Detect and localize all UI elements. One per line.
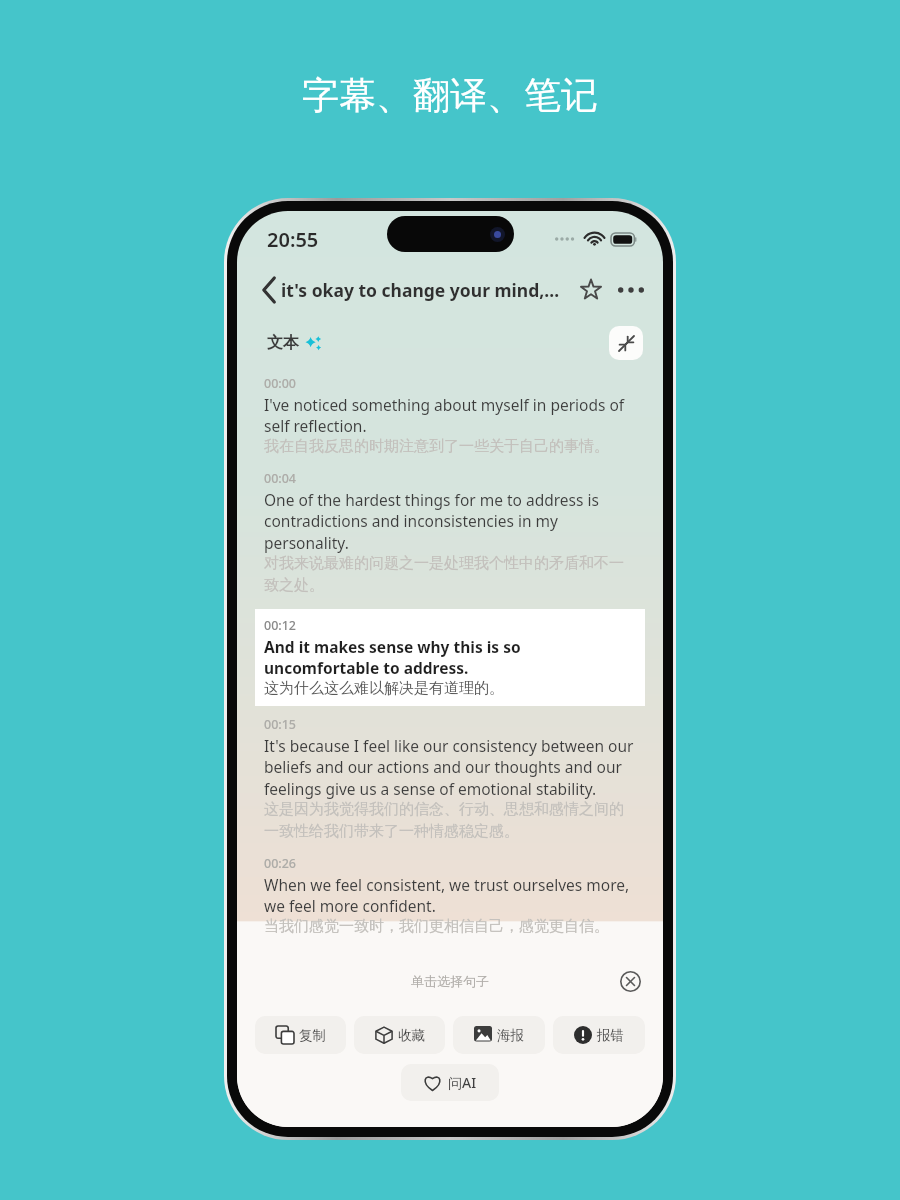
staticText: When we feel consistent, we trust oursel…: [264, 874, 636, 917]
staticText: I've noticed something about myself in p…: [264, 394, 636, 437]
staticText: 00:12: [264, 617, 297, 634]
staticText: It's because I feel like our consistency…: [264, 735, 636, 800]
button[interactable]: 00:12: [255, 609, 645, 706]
staticText: 文本: [267, 333, 299, 353]
button[interactable]: Close: [615, 966, 645, 996]
staticText: 00:26: [264, 855, 297, 872]
button[interactable]: 00:00: [237, 375, 663, 456]
staticText: 20:55: [267, 226, 319, 253]
staticText: One of the hardest things for me to addr…: [264, 489, 636, 554]
button[interactable]: Collapse: [609, 326, 643, 360]
staticText: 00:04: [264, 470, 297, 487]
button[interactable]: 报错: [553, 1016, 645, 1054]
staticText: 单击选择句子: [411, 973, 489, 989]
staticText: 复制: [299, 1027, 326, 1044]
staticText: 00:15: [264, 716, 297, 733]
button[interactable]: More options: [613, 272, 649, 308]
button[interactable]: 00:26: [237, 855, 663, 936]
button[interactable]: 00:15: [237, 716, 663, 841]
button[interactable]: 复制: [255, 1016, 346, 1054]
staticText: 收藏: [398, 1027, 425, 1044]
staticText: 00:00: [264, 375, 297, 392]
button[interactable]: Favorite: [573, 272, 609, 308]
button[interactable]: 收藏: [354, 1016, 445, 1054]
staticText: 报错: [597, 1027, 624, 1044]
staticText: 我在自我反思的时期注意到了一些关于自己的事情。: [264, 437, 609, 456]
staticText: 字幕、翻译、笔记: [302, 72, 598, 119]
staticText: 海报: [497, 1027, 524, 1044]
staticText: it's okay to change your mind,…: [281, 278, 560, 302]
staticText: And it makes sense why this is so uncomf…: [264, 636, 636, 679]
button[interactable]: 文本: [263, 329, 326, 357]
button[interactable]: 问AI: [401, 1064, 499, 1101]
button[interactable]: 00:04: [237, 470, 663, 595]
staticText: 这是因为我觉得我们的信念、行动、思想和感情之间的一致性给我们带来了一种情感稳定感…: [264, 800, 636, 841]
button[interactable]: 海报: [453, 1016, 545, 1054]
staticText: 这为什么这么难以解决是有道理的。: [264, 679, 504, 698]
staticText: 当我们感觉一致时，我们更相信自己，感觉更自信。: [264, 917, 609, 936]
button[interactable]: Back: [249, 270, 289, 310]
staticText: 对我来说最难的问题之一是处理我个性中的矛盾和不一致之处。: [264, 554, 636, 595]
staticText: 问AI: [448, 1073, 477, 1092]
